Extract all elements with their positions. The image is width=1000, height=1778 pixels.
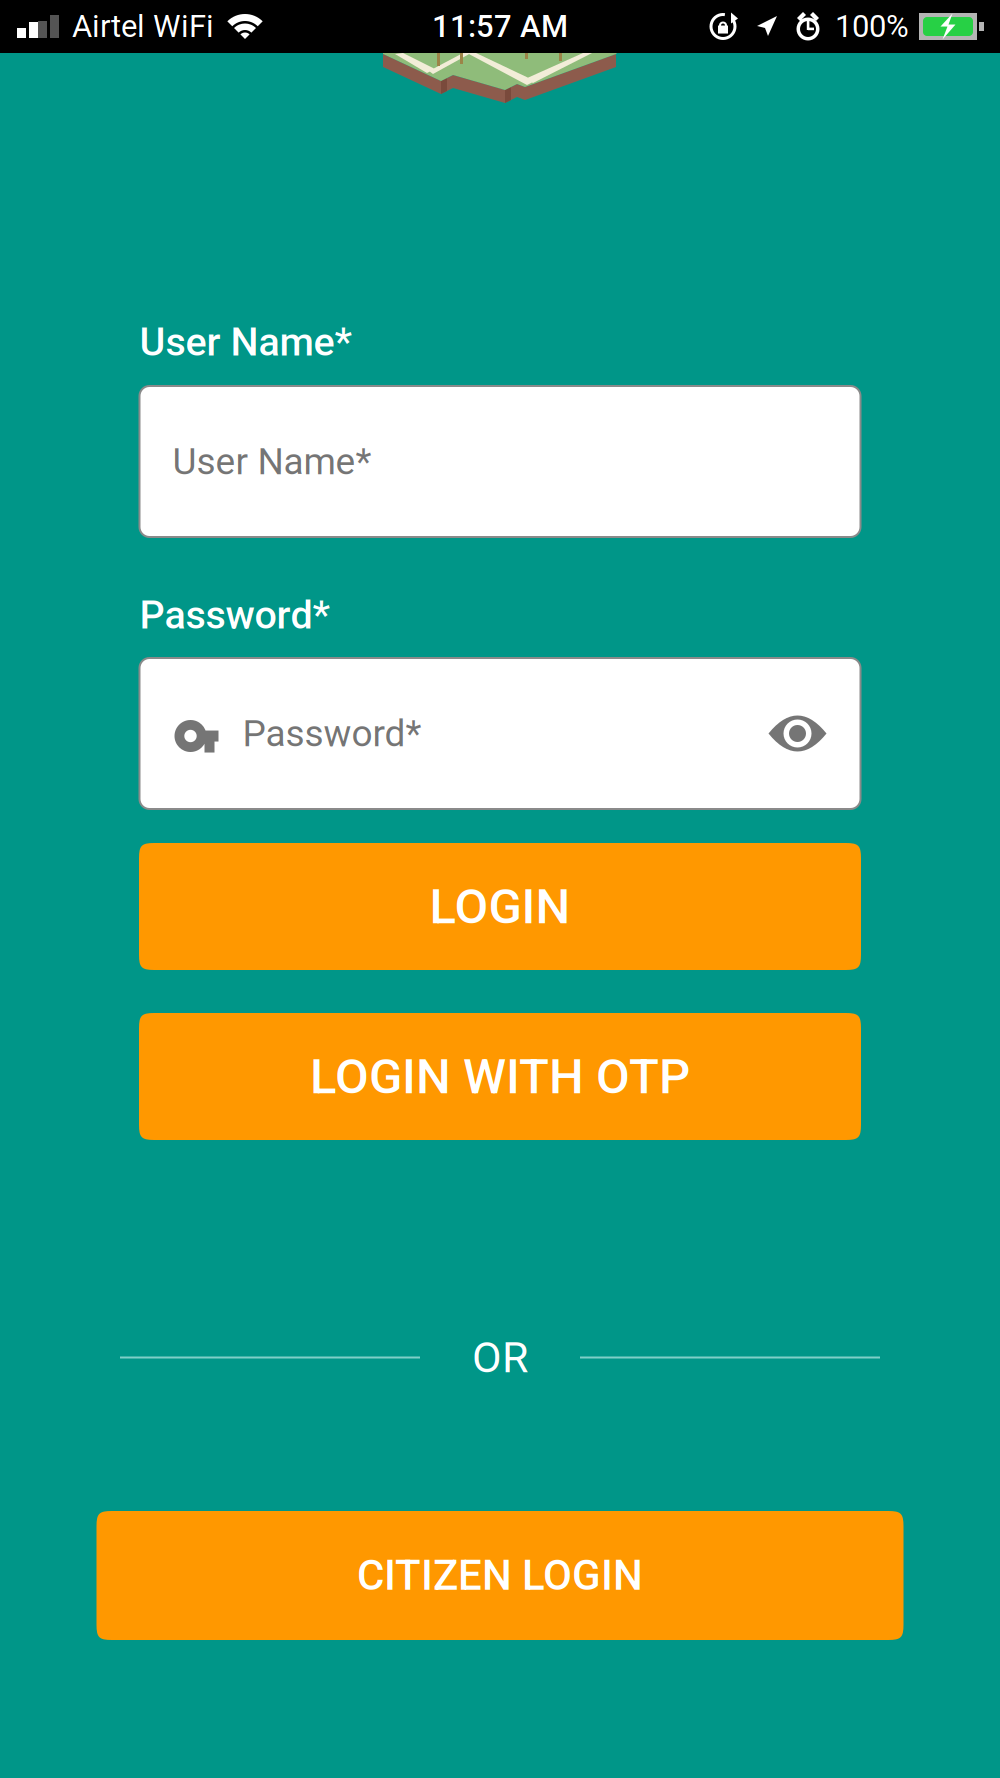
staticText: LOGIN WITH OTP	[310, 1048, 690, 1105]
staticText: 100%	[835, 8, 909, 45]
staticText: CITIZEN LOGIN	[357, 1551, 643, 1600]
button[interactable]: CITIZEN LOGIN	[96, 1511, 903, 1640]
button[interactable]: LOGIN WITH OTP	[139, 1013, 861, 1140]
button[interactable]: Password*	[139, 658, 860, 809]
staticText: Airtel WiFi	[72, 8, 214, 45]
staticText: OR	[472, 1332, 528, 1383]
button[interactable]: User Name*	[139, 386, 860, 537]
staticText: User Name*	[172, 440, 371, 483]
staticText: Password*	[139, 592, 330, 638]
button[interactable]: LOGIN	[139, 843, 861, 970]
staticText: 11:57 AM	[432, 8, 568, 45]
staticText: LOGIN	[429, 878, 570, 935]
staticText: User Name*	[139, 319, 352, 365]
staticText: Password*	[242, 712, 421, 755]
